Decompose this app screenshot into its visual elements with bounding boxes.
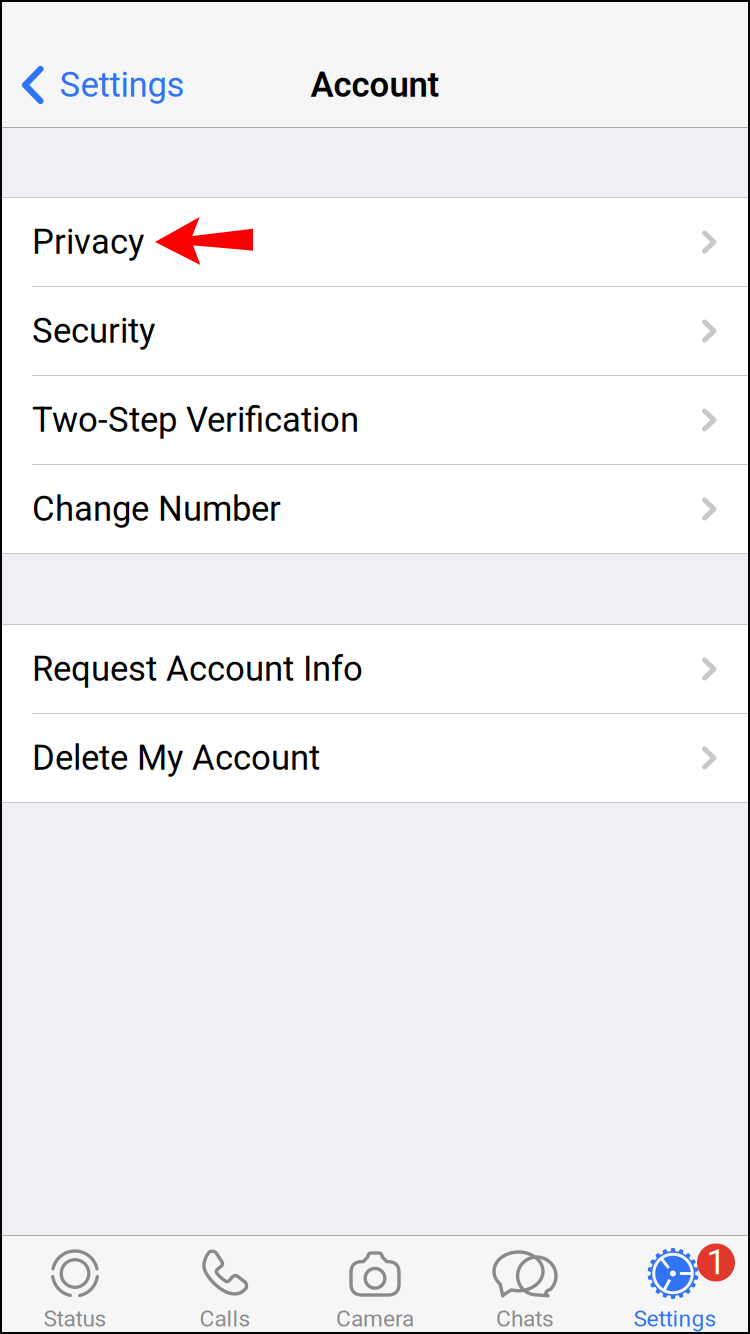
staticText: Delete My Account — [32, 738, 320, 778]
button[interactable]: Change Number — [0, 465, 750, 553]
staticText: Status — [43, 1305, 106, 1332]
staticText: Calls — [199, 1305, 250, 1332]
staticText: 1 — [706, 1242, 725, 1283]
staticText: Settings — [633, 1305, 716, 1332]
staticText: Account — [310, 65, 439, 105]
button[interactable]: Privacy — [0, 198, 750, 286]
staticText: Privacy — [32, 222, 144, 262]
button[interactable]: Camera — [300, 1237, 450, 1332]
button[interactable]: Request Account Info — [0, 625, 750, 713]
staticText: Two-Step Verification — [32, 400, 359, 440]
staticText: Request Account Info — [32, 649, 363, 689]
button[interactable]: Calls — [150, 1237, 300, 1332]
staticText: Chats — [496, 1305, 554, 1332]
button[interactable]: Settings — [0, 42, 196, 128]
button[interactable]: Delete My Account — [0, 714, 750, 802]
button[interactable]: Security — [0, 287, 750, 375]
button[interactable]: Status — [0, 1237, 150, 1332]
staticText: Security — [32, 311, 155, 351]
staticText: Camera — [336, 1305, 414, 1332]
button[interactable]: Chats — [450, 1237, 600, 1332]
button[interactable]: 1 — [600, 1237, 750, 1332]
button[interactable]: Two-Step Verification — [0, 376, 750, 464]
staticText: Change Number — [32, 489, 281, 529]
staticText: Settings — [59, 65, 184, 105]
